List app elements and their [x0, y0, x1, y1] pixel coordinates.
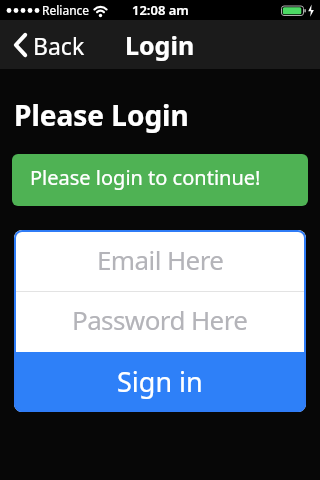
staticText: Password Here: [72, 302, 248, 337]
staticText: Please Login: [14, 96, 189, 134]
staticText: Back: [33, 30, 85, 61]
button[interactable]: Sign in: [14, 352, 306, 412]
staticText: Email Here: [97, 242, 224, 277]
staticText: Reliance: [42, 2, 90, 18]
staticText: 12:08 am: [132, 1, 189, 19]
button[interactable]: Password Here: [14, 292, 306, 352]
staticText: Login: [125, 28, 195, 62]
button[interactable]: Please login to continue!: [12, 154, 308, 206]
button[interactable]: Email Here: [14, 230, 306, 291]
staticText: Sign in: [117, 363, 203, 400]
button[interactable]: Back: [14, 29, 85, 60]
staticText: Please login to continue!: [30, 164, 261, 191]
